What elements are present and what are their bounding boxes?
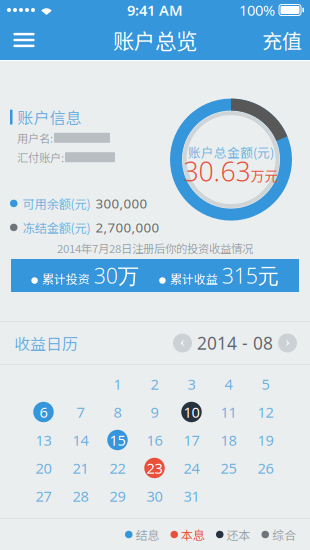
button[interactable]: Previous month (173, 333, 192, 352)
staticText: 还本 (226, 526, 250, 543)
button[interactable]: 16 (136, 426, 173, 454)
staticText: 16 (146, 430, 162, 450)
staticText: 结息 (135, 526, 159, 543)
staticText: 31 (183, 486, 199, 506)
staticText: 累计投资 (42, 270, 90, 287)
staticText: 3 (187, 374, 195, 394)
staticText: 29 (109, 486, 125, 506)
staticText: 9:41 AM (127, 0, 183, 20)
staticText: 18 (220, 430, 236, 450)
button[interactable]: 31 (173, 482, 210, 510)
staticText: 8 (113, 402, 121, 422)
button[interactable]: 1 (99, 370, 136, 398)
button[interactable]: 17 (173, 426, 210, 454)
button[interactable]: 8 (99, 398, 136, 426)
button[interactable]: 11 (210, 398, 247, 426)
button[interactable]: 2 (136, 370, 173, 398)
button[interactable]: 30 (136, 482, 173, 510)
staticText: 19 (257, 430, 273, 450)
button[interactable]: 15 (99, 426, 136, 454)
staticText: 10 (183, 402, 199, 422)
staticText: 20 (35, 458, 51, 478)
staticText: 22 (109, 458, 125, 478)
staticText: 汇付账户: (17, 149, 64, 165)
staticText: 24 (183, 458, 199, 478)
staticText: 万元 (250, 165, 278, 185)
staticText: 7 (76, 402, 84, 422)
staticText: 300,000 (95, 195, 147, 212)
staticText: 12 (257, 402, 273, 422)
button[interactable]: 25 (210, 454, 247, 482)
staticText: 25 (220, 458, 236, 478)
button[interactable]: 10 (173, 398, 210, 426)
staticText: 11 (220, 402, 236, 422)
staticText: 综合 (272, 526, 296, 543)
button[interactable]: 3 (173, 370, 210, 398)
staticText: 23 (146, 458, 162, 478)
button[interactable]: 13 (25, 426, 62, 454)
staticText: 2014 - 08 (197, 331, 273, 354)
staticText: 收益日历 (14, 331, 78, 355)
staticText: 100% (239, 0, 275, 20)
staticText: 用户名: (17, 130, 53, 146)
staticText: 315元 (222, 261, 279, 290)
button[interactable]: 26 (247, 454, 284, 482)
button[interactable]: 9 (136, 398, 173, 426)
staticText: 账户信息 (17, 105, 81, 129)
button[interactable]: 18 (210, 426, 247, 454)
staticText: 2014年7月28日注册后你的投资收益情况 (57, 240, 253, 256)
staticText: 冻结金额(元) (22, 218, 90, 236)
button[interactable]: 19 (247, 426, 284, 454)
staticText: 30.63 (183, 153, 250, 189)
button[interactable]: 24 (173, 454, 210, 482)
staticText: 4 (224, 374, 232, 394)
button[interactable]: 28 (62, 482, 99, 510)
staticText: 2,700,000 (95, 219, 159, 236)
staticText: 27 (35, 486, 51, 506)
staticText: 21 (72, 458, 88, 478)
staticText: 2 (150, 374, 158, 394)
staticText: 5 (261, 374, 269, 394)
button[interactable]: 5 (247, 370, 284, 398)
staticText: 本息 (181, 526, 205, 543)
button[interactable]: 14 (62, 426, 99, 454)
staticText: 可用余额(元) (22, 194, 90, 212)
button[interactable]: 6 (25, 398, 62, 426)
staticText: 账户总金额(元) (188, 143, 274, 161)
staticText: 26 (257, 458, 273, 478)
button[interactable]: 22 (99, 454, 136, 482)
button[interactable]: 7 (62, 398, 99, 426)
button[interactable]: 23 (136, 454, 173, 482)
button[interactable]: 12 (247, 398, 284, 426)
button[interactable]: 27 (25, 482, 62, 510)
button[interactable]: 29 (99, 482, 136, 510)
staticText: 充值 (262, 25, 302, 54)
staticText: 6 (39, 402, 47, 422)
staticText: 14 (72, 430, 88, 450)
button[interactable]: 20 (25, 454, 62, 482)
staticText: 1 (113, 374, 121, 394)
button[interactable]: 21 (62, 454, 99, 482)
staticText: 30万 (94, 261, 139, 290)
staticText: 累计收益 (170, 270, 218, 287)
button[interactable]: Next month (278, 333, 297, 352)
button[interactable]: 4 (210, 370, 247, 398)
button[interactable]: Menu (0, 20, 48, 60)
staticText: 9 (150, 402, 158, 422)
button[interactable]: 充值 (254, 20, 310, 60)
staticText: 15 (109, 430, 125, 450)
staticText: 30 (146, 486, 162, 506)
staticText: 13 (35, 430, 51, 450)
staticText: 账户总览 (113, 25, 197, 55)
staticText: 28 (72, 486, 88, 506)
staticText: 17 (183, 430, 199, 450)
